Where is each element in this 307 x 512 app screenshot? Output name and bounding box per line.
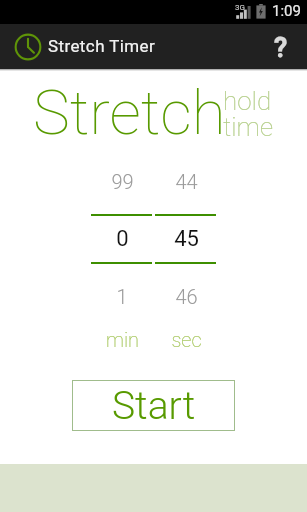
staticText: 1: [116, 285, 128, 308]
button[interactable]: 1: [62, 285, 182, 308]
staticText: hold: [223, 86, 272, 116]
button[interactable]: 44: [126, 170, 246, 193]
button[interactable]: Start: [72, 380, 235, 431]
staticText: 3G: [235, 3, 245, 12]
staticText: 0: [116, 226, 129, 252]
button[interactable]: sec: [126, 328, 246, 351]
button[interactable]: min: [62, 328, 182, 351]
staticText: sec: [171, 328, 202, 351]
staticText: 45: [174, 226, 199, 252]
staticText: 44: [175, 170, 198, 193]
staticText: Stretch Timer: [48, 36, 156, 56]
button[interactable]: 99: [62, 170, 182, 193]
staticText: 1:09: [272, 2, 301, 20]
button[interactable]: 0: [62, 226, 182, 252]
staticText: ?: [274, 32, 288, 64]
button[interactable]: 45: [126, 226, 246, 252]
staticText: min: [106, 328, 139, 351]
staticText: Stretch: [33, 76, 226, 149]
button[interactable]: 46: [126, 285, 246, 308]
staticText: Start: [112, 383, 196, 429]
staticText: 99: [111, 170, 134, 193]
button[interactable]: Help: [259, 24, 307, 69]
staticText: time: [223, 112, 273, 142]
staticText: 46: [175, 285, 198, 308]
